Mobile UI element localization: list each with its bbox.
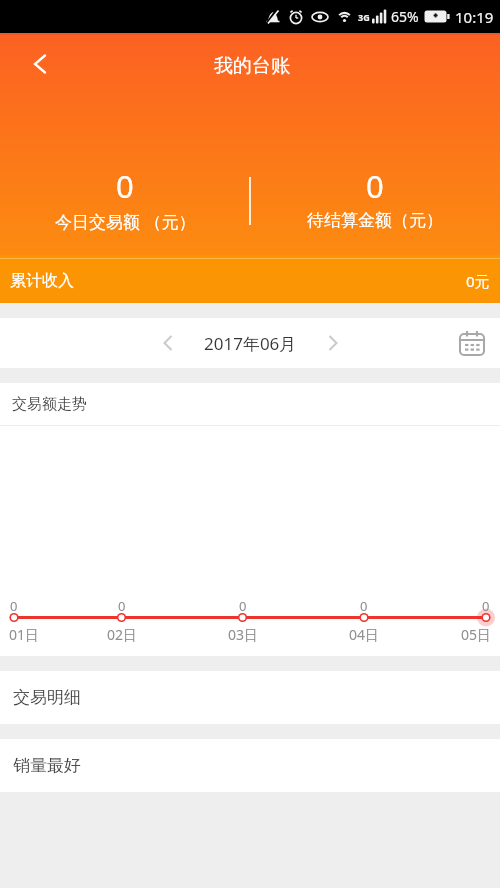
button[interactable] <box>456 327 488 359</box>
staticText: 0 <box>360 597 368 615</box>
staticText: 销量最好 <box>13 755 81 776</box>
button[interactable]: 累计收入 <box>0 255 500 303</box>
staticText: 0 <box>482 597 490 615</box>
staticText: 0元 <box>466 271 490 291</box>
button[interactable] <box>315 325 351 361</box>
staticText: 交易额走势 <box>12 395 87 414</box>
staticText: 01日 <box>9 625 40 644</box>
staticText: 2017年06月 <box>204 332 297 355</box>
staticText: 0 <box>10 597 18 615</box>
staticText: 0 <box>239 597 247 615</box>
staticText: 0 <box>366 165 384 207</box>
staticText: 3G <box>358 11 370 23</box>
staticText: 待结算金额（元） <box>307 210 443 231</box>
staticText: 05日 <box>461 625 492 644</box>
staticText: 0 <box>118 597 126 615</box>
staticText: 我的台账 <box>214 54 290 78</box>
staticText: 今日交易额 （元） <box>55 210 196 233</box>
button[interactable]: 交易明细 <box>0 671 500 724</box>
staticText: 04日 <box>349 625 380 644</box>
staticText: 0 <box>116 165 134 207</box>
staticText: 交易明细 <box>13 687 81 708</box>
staticText: 累计收入 <box>10 271 74 291</box>
button[interactable] <box>150 325 186 361</box>
staticText: 02日 <box>107 625 138 644</box>
button[interactable] <box>20 44 60 84</box>
staticText: 03日 <box>228 625 259 644</box>
button[interactable]: 销量最好 <box>0 739 500 792</box>
staticText: 65% <box>391 7 419 26</box>
staticText: 10:19 <box>455 7 494 27</box>
